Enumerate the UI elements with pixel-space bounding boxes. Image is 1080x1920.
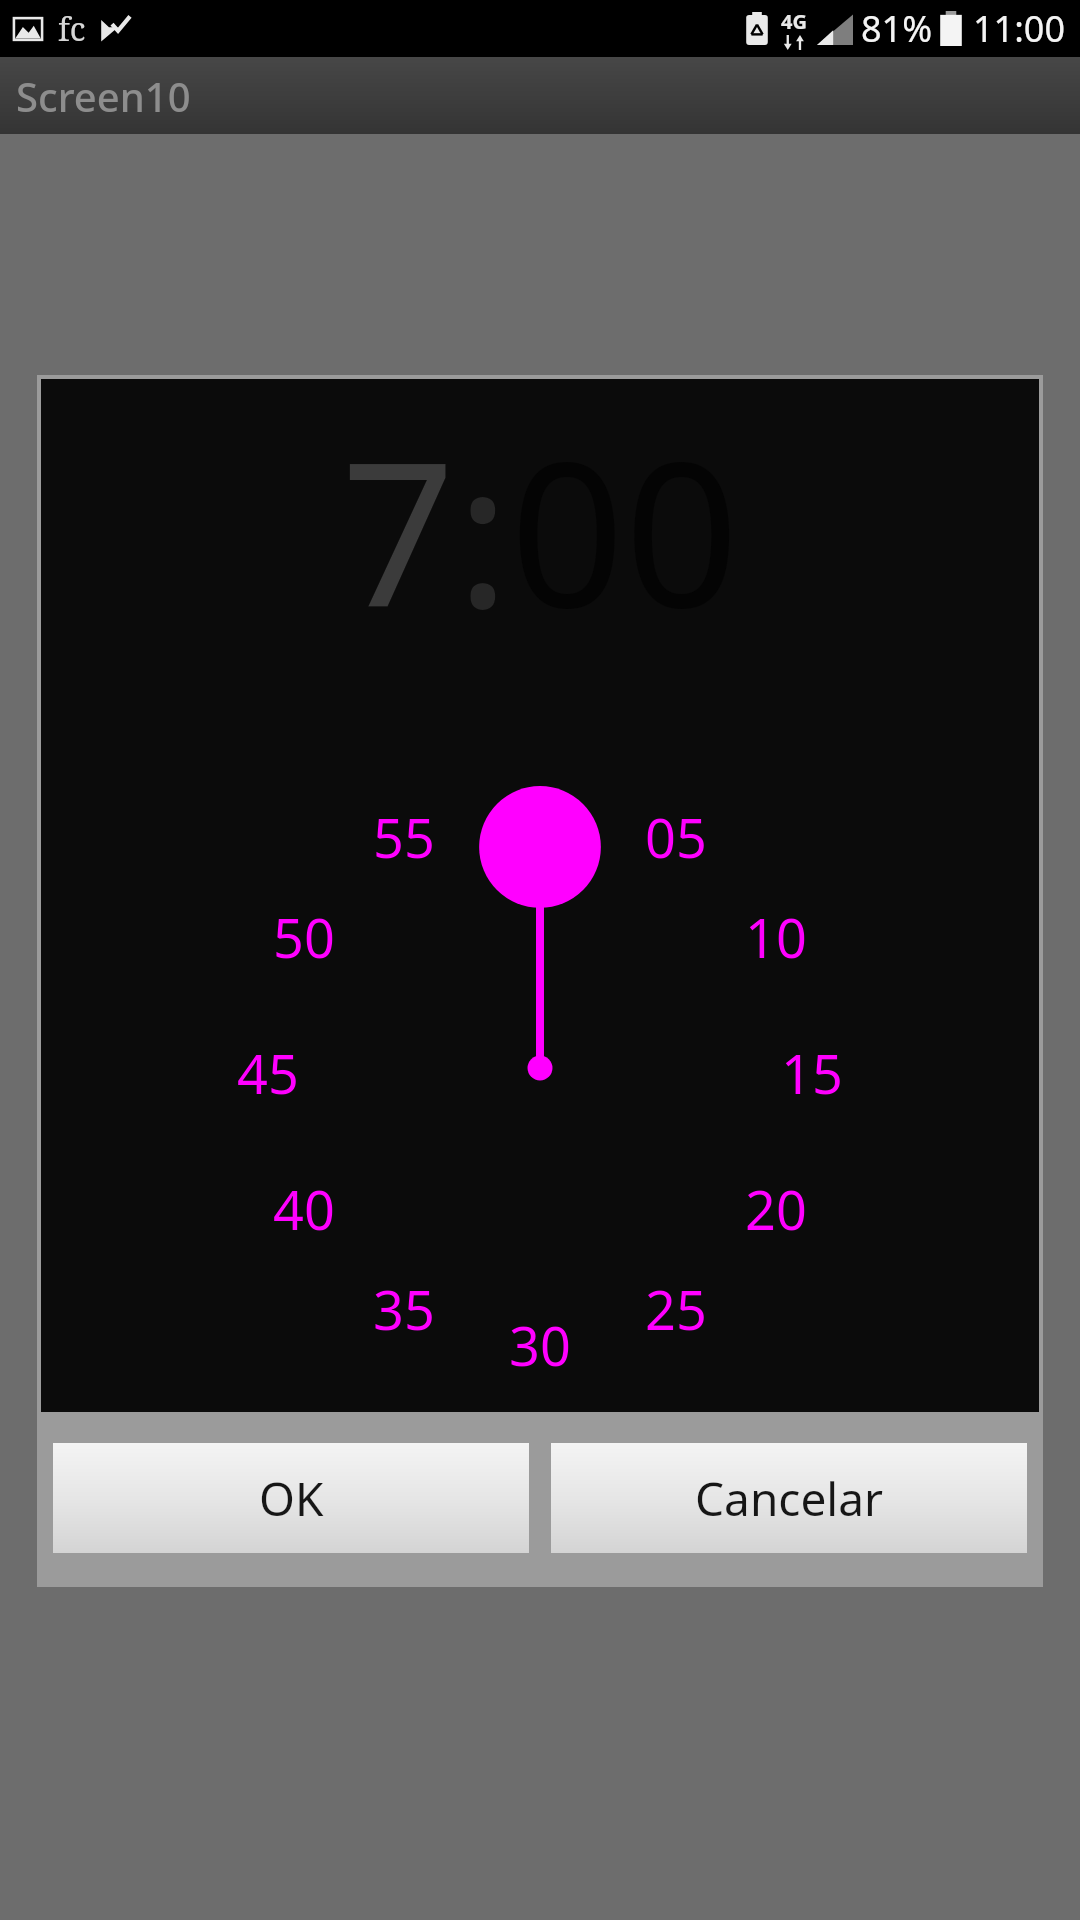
staticText: :: [456, 393, 510, 665]
button[interactable]: 05: [645, 800, 707, 874]
staticText: 55: [373, 800, 435, 874]
button[interactable]: 15: [781, 1036, 843, 1110]
button[interactable]: 50: [273, 900, 335, 974]
staticText: 81%: [861, 4, 933, 53]
staticText: 45: [237, 1036, 299, 1110]
button[interactable]: 10: [745, 900, 807, 974]
button[interactable]: OK: [53, 1443, 529, 1553]
button[interactable]: 55: [373, 800, 435, 874]
staticText: 20: [745, 1172, 807, 1246]
staticText: 25: [645, 1272, 707, 1346]
staticText: 05: [645, 800, 707, 874]
button[interactable]: Cancelar: [551, 1443, 1027, 1553]
button[interactable]: 20: [745, 1172, 807, 1246]
staticText: 40: [273, 1172, 335, 1246]
button[interactable]: 45: [237, 1036, 299, 1110]
button[interactable]: 40: [273, 1172, 335, 1246]
staticText: 50: [273, 900, 335, 974]
staticText: 4G: [781, 8, 807, 35]
other: Gallery: [12, 13, 44, 45]
button[interactable]: 30: [509, 1308, 571, 1382]
other: Tasks: [100, 14, 130, 44]
staticText: Screen10: [16, 69, 191, 123]
staticText: 11:00: [973, 4, 1066, 53]
staticText: Cancelar: [695, 1467, 884, 1530]
staticText: 10: [745, 900, 807, 974]
button[interactable]: 25: [645, 1272, 707, 1346]
staticText: fc: [58, 7, 86, 51]
staticText: 35: [373, 1272, 435, 1346]
button[interactable]: 7: [341, 393, 456, 665]
staticText: 30: [509, 1308, 571, 1382]
staticText: OK: [259, 1467, 324, 1530]
button[interactable]: 35: [373, 1272, 435, 1346]
staticText: 15: [781, 1036, 843, 1110]
